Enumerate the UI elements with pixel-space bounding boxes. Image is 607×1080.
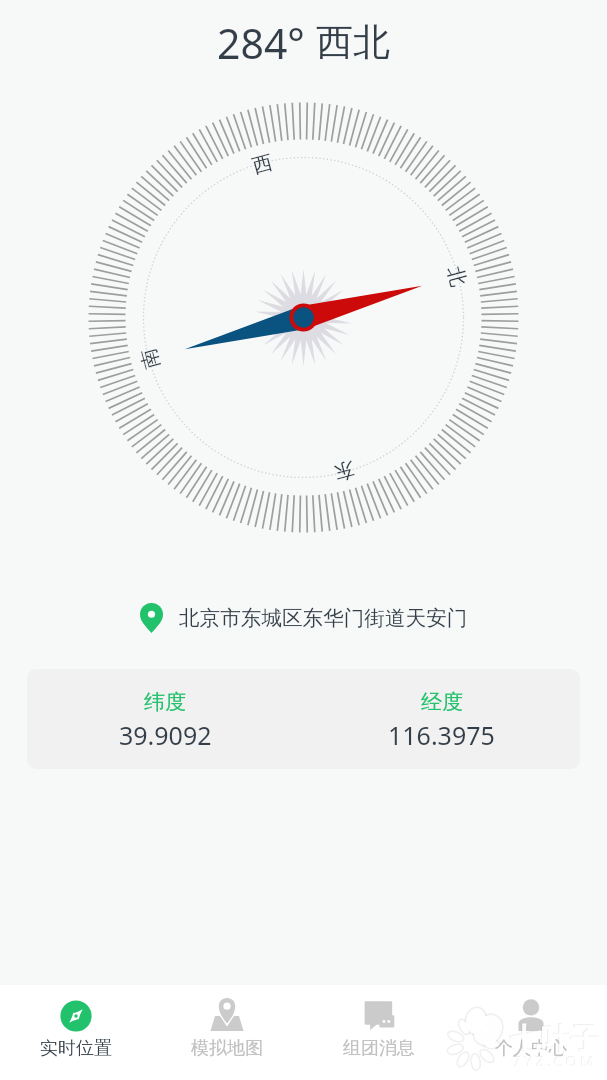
- staticText: 39.9092: [119, 718, 212, 752]
- button[interactable]: 模拟地图: [151, 985, 303, 1080]
- button[interactable]: 组团消息: [303, 985, 455, 1080]
- staticText: 284°: [217, 15, 305, 71]
- other: 实时位置: [58, 998, 94, 1034]
- button[interactable]: 实时位置: [0, 985, 151, 1080]
- button[interactable]: 经度: [303, 669, 580, 769]
- staticText: 北京市东城区东华门街道天安门: [179, 605, 468, 631]
- staticText: 模拟地图: [191, 1037, 263, 1060]
- other: 个人中心: [513, 998, 549, 1034]
- other: Compass dial, heading 284 degrees: [0, 0, 607, 635]
- button[interactable]: Current location: [0, 603, 607, 633]
- staticText: 经度: [421, 689, 463, 715]
- button[interactable]: 纬度: [27, 669, 303, 769]
- staticText: 西北: [316, 19, 390, 66]
- other: 组团消息: [361, 998, 397, 1034]
- staticText: 组团消息: [343, 1037, 415, 1060]
- staticText: 116.3975: [388, 718, 495, 752]
- other: Current location: [140, 603, 163, 633]
- staticText: 个人中心: [495, 1037, 567, 1060]
- other: 模拟地图: [209, 998, 245, 1034]
- staticText: 纬度: [144, 689, 186, 715]
- button[interactable]: 个人中心: [455, 985, 607, 1080]
- staticText: 实时位置: [40, 1037, 112, 1060]
